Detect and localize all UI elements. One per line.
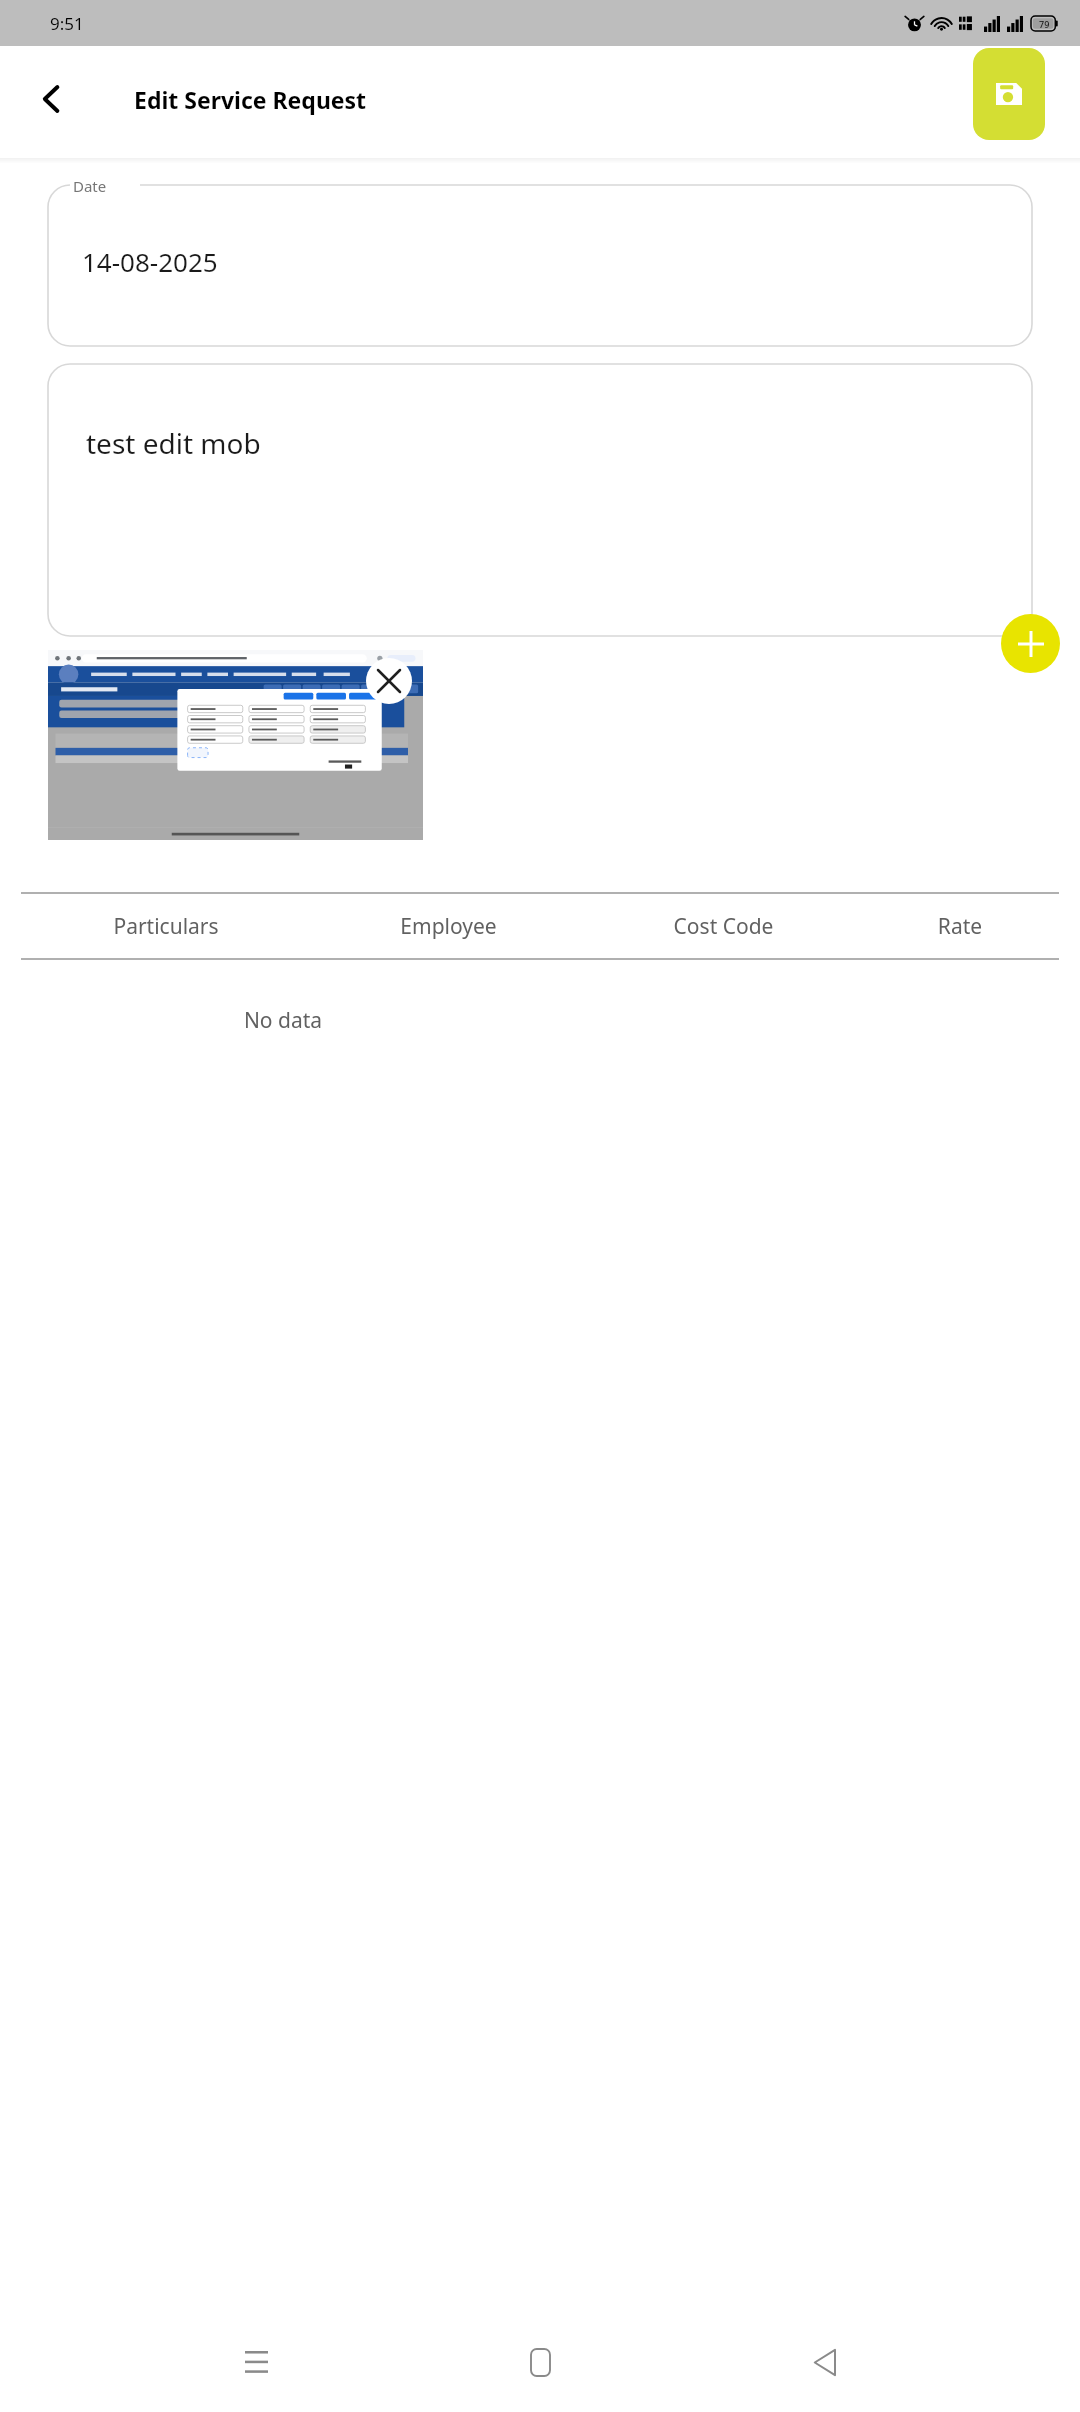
- staticText: 9:51: [50, 12, 84, 35]
- button[interactable]: Save: [973, 48, 1045, 140]
- staticText: Date: [73, 176, 107, 196]
- staticText: No data: [4, 1006, 562, 1035]
- staticText: test edit mob: [86, 424, 261, 462]
- button[interactable]: Back: [26, 73, 78, 125]
- staticText: Particulars: [21, 912, 311, 941]
- staticText: Cost Code: [586, 912, 861, 941]
- button[interactable]: Back: [796, 2334, 852, 2390]
- button[interactable]: Home: [512, 2334, 568, 2390]
- button[interactable]: Remove attachment: [366, 658, 412, 704]
- staticText: Edit Service Request: [134, 84, 367, 115]
- button[interactable]: Add: [1001, 614, 1060, 673]
- button[interactable]: Recents: [228, 2334, 284, 2390]
- staticText: Employee: [311, 912, 586, 941]
- staticText: 14-08-2025: [82, 244, 218, 279]
- staticText: 79: [1039, 18, 1050, 30]
- staticText: Rate: [861, 912, 1059, 941]
